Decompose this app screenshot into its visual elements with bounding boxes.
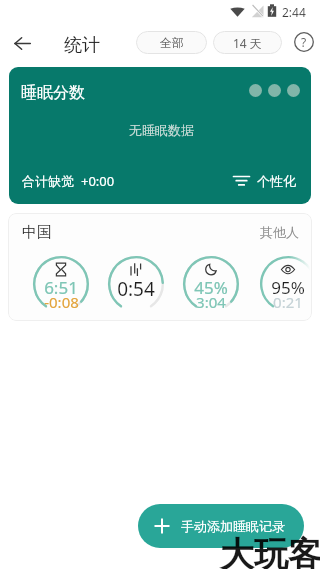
staticText: ?	[301, 34, 307, 50]
button[interactable]: 个性化	[231, 170, 298, 191]
button[interactable]: 14 天	[213, 31, 282, 54]
button[interactable]: 0:54	[107, 255, 165, 313]
staticText: 45%	[194, 276, 228, 299]
staticText: 个性化	[257, 173, 296, 189]
staticText: 手动添加睡眠记录	[181, 518, 285, 534]
button[interactable]: Back	[4, 25, 40, 61]
staticText: 14 天	[233, 35, 262, 51]
staticText: +0:00	[81, 172, 115, 190]
staticText: 中国	[22, 223, 52, 242]
button[interactable]: 全部	[136, 31, 207, 54]
staticText: 0:21	[273, 292, 303, 312]
staticText: 3:04	[196, 292, 226, 312]
staticText: 2:44	[282, 4, 306, 20]
staticText: 睡眠分数	[21, 83, 85, 103]
button[interactable]: 睡眠分数	[9, 67, 311, 204]
staticText: 其他人	[260, 224, 299, 240]
staticText: -0:08	[44, 292, 79, 312]
staticText: 合计缺觉	[22, 173, 74, 189]
staticText: 95%	[271, 276, 305, 299]
staticText: 无睡眠数据	[129, 122, 194, 138]
staticText: 6:51	[44, 276, 78, 299]
staticText: 0:54	[117, 276, 155, 302]
button[interactable]: 手动添加睡眠记录	[138, 504, 304, 548]
staticText: 统计	[64, 34, 100, 57]
staticText: 全部	[160, 35, 184, 50]
button[interactable]: 45%	[182, 255, 240, 313]
button[interactable]: 95%	[259, 255, 312, 313]
button[interactable]: Help	[290, 28, 318, 56]
button[interactable]: 6:51	[32, 255, 90, 313]
staticText: 大玩客	[220, 533, 320, 569]
